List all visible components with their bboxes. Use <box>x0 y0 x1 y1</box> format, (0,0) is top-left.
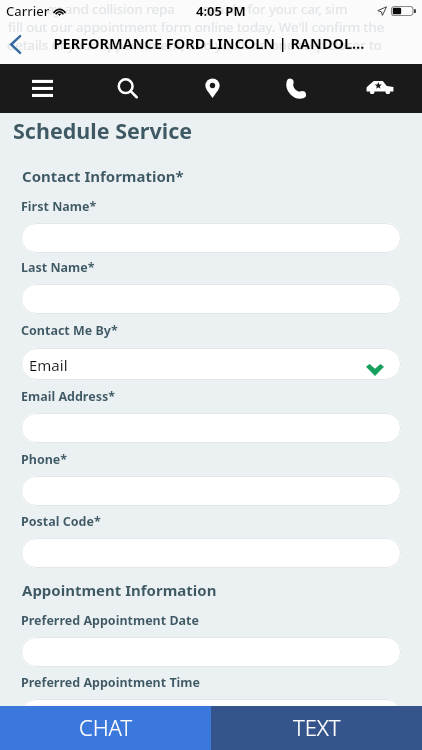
button[interactable]: TEXT <box>211 706 422 750</box>
staticText: Preferred Appointment Time <box>21 674 201 691</box>
staticText: 4:05 PM <box>196 2 246 20</box>
staticText: Contact Information* <box>22 166 184 186</box>
staticText: First Name* <box>21 198 97 215</box>
button[interactable]: Call <box>254 64 338 113</box>
button[interactable]: Menu <box>0 64 85 113</box>
staticText: Postal Code* <box>21 513 101 530</box>
staticText: Email Address* <box>21 388 115 405</box>
button[interactable]: Phone* <box>21 476 401 506</box>
button[interactable]: Vehicles <box>338 64 422 113</box>
button[interactable]: Email <box>21 348 401 380</box>
staticText: Contact Me By* <box>21 322 118 339</box>
button[interactable]: Preferred Appointment Date <box>21 637 401 667</box>
button[interactable]: First Name* <box>21 223 401 253</box>
staticText: Schedule Service <box>13 116 193 145</box>
staticText: Phone* <box>21 451 68 468</box>
button[interactable]: Locations <box>170 64 254 113</box>
button[interactable]: Back <box>0 24 31 64</box>
button[interactable]: CHAT <box>0 706 211 750</box>
staticText: TEXT <box>293 712 341 742</box>
staticText: PERFORMANCE FORD LINCOLN | RANDOL… <box>31 33 387 53</box>
button[interactable]: Email Address* <box>21 413 401 443</box>
staticText: Preferred Appointment Date <box>21 612 199 629</box>
button[interactable]: Postal Code* <box>21 538 401 568</box>
staticText: details of your appointment, and you'll … <box>7 36 382 54</box>
button[interactable]: Last Name* <box>21 284 401 314</box>
staticText: ay and collision repa can do for your ca… <box>47 0 348 18</box>
staticText: Appointment Information <box>22 580 217 600</box>
button[interactable]: Preferred Appointment Time <box>21 699 401 729</box>
staticText: fill out our appointment form online tod… <box>8 18 385 36</box>
staticText: CHAT <box>79 712 133 742</box>
staticText: Carrier <box>6 2 50 20</box>
button[interactable]: Search <box>85 64 170 113</box>
staticText: Last Name* <box>21 259 95 276</box>
staticText: Email <box>29 355 68 375</box>
